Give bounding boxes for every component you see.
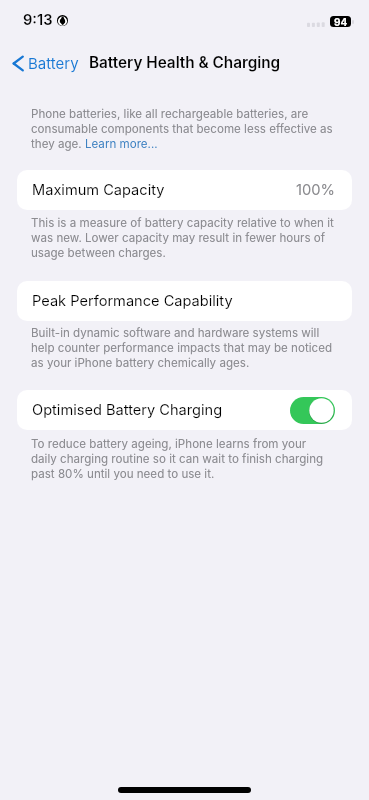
staticText: Battery Health & Charging bbox=[89, 53, 281, 72]
staticText: Optimised Battery Charging bbox=[32, 401, 223, 419]
button[interactable]: Peak Performance Capability bbox=[17, 281, 352, 321]
staticText: 100% bbox=[296, 181, 335, 199]
staticText: Battery bbox=[28, 54, 79, 72]
button[interactable]: Optimised Battery Charging bbox=[17, 390, 352, 430]
staticText: Peak Performance Capability bbox=[32, 292, 233, 310]
staticText: Built-in dynamic software and hardware s… bbox=[31, 325, 334, 370]
button[interactable]: Optimised Battery Charging toggle bbox=[290, 397, 335, 424]
staticText: To reduce battery ageing, iPhone learns … bbox=[31, 436, 334, 481]
button[interactable]: Battery bbox=[0, 50, 87, 76]
staticText: 94 bbox=[334, 16, 348, 27]
button[interactable]: Maximum Capacity bbox=[17, 170, 352, 210]
staticText: This is a measure of battery capacity re… bbox=[31, 215, 334, 260]
staticText: 9:13 bbox=[23, 11, 53, 29]
staticText: Maximum Capacity bbox=[32, 181, 165, 199]
staticText: Phone batteries, like all rechargeable b… bbox=[31, 106, 334, 151]
